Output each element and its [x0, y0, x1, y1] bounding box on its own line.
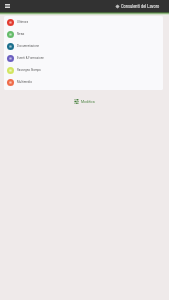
- staticText: Rassegna Stampa: [17, 68, 41, 72]
- staticText: Documentazione: [17, 44, 40, 48]
- button[interactable]: Documentazione: [4, 40, 163, 52]
- staticText: Multimedia: [17, 80, 32, 84]
- button[interactable]: Modifica: [71, 98, 98, 105]
- staticText: News: [17, 32, 25, 36]
- staticText: Ultimora: [17, 20, 29, 24]
- staticText: Eventi & Formazione: [17, 56, 44, 60]
- button[interactable]: Rassegna Stampa: [4, 64, 163, 76]
- button[interactable]: News: [4, 28, 163, 40]
- button[interactable]: Ultimora: [4, 16, 163, 28]
- button[interactable]: Menu: [3, 2, 11, 10]
- staticText: Modifica: [81, 99, 95, 104]
- button[interactable]: Eventi & Formazione: [4, 52, 163, 64]
- staticText: Consulenti del Lavoro: [121, 4, 160, 9]
- button[interactable]: Multimedia: [4, 76, 163, 88]
